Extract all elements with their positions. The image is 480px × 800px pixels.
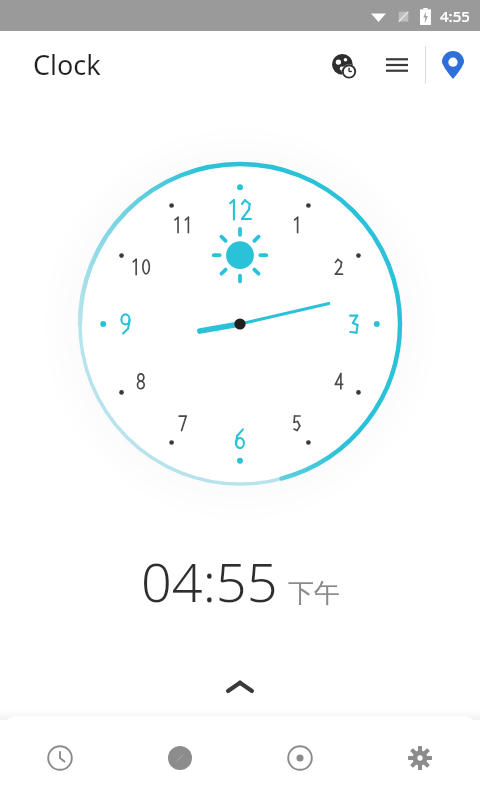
staticText: 4:55 [440, 6, 470, 26]
button[interactable]: Analog clock 4:55 [60, 144, 420, 504]
button[interactable]: Expand [213, 660, 267, 714]
button[interactable]: Compass [152, 730, 208, 786]
button[interactable]: World clock [321, 43, 365, 87]
button[interactable]: Settings [392, 730, 448, 786]
button[interactable]: Menu [375, 43, 419, 87]
button[interactable]: Location [426, 38, 480, 92]
staticText: Clock [33, 46, 101, 83]
staticText: 04:55 [141, 544, 278, 618]
button[interactable]: Timer [272, 730, 328, 786]
staticText: 下午 [288, 577, 340, 610]
button[interactable]: Alarm [32, 730, 88, 786]
